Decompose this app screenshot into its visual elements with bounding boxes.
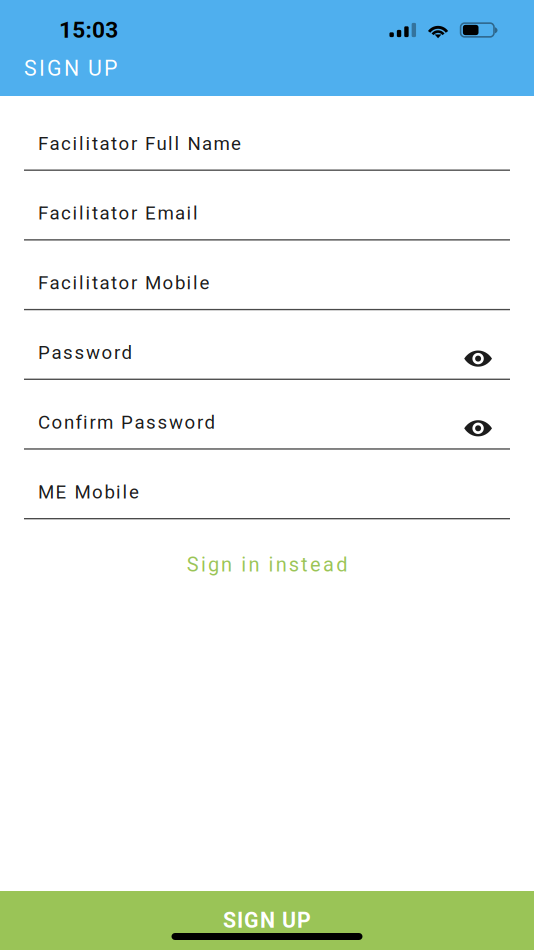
button[interactable]: Show Password [464, 332, 534, 373]
staticText: Sign in instead [187, 553, 347, 576]
button[interactable]: SIGN UP [0, 891, 534, 950]
staticText: Password [38, 342, 132, 364]
staticText: Facilitator Email [38, 202, 198, 224]
staticText: Facilitator Full Name [38, 133, 241, 154]
staticText: 15:03 [59, 17, 118, 43]
staticText: ME Mobile [38, 481, 139, 503]
staticText: SIGN UP [24, 56, 117, 81]
staticText: SIGN UP [223, 908, 311, 933]
staticText: Facilitator Mobile [38, 272, 209, 294]
button[interactable]: Show Confirm Password [464, 402, 534, 443]
button[interactable]: Sign in instead [182, 536, 352, 591]
staticText: Confirm Password [38, 411, 215, 433]
